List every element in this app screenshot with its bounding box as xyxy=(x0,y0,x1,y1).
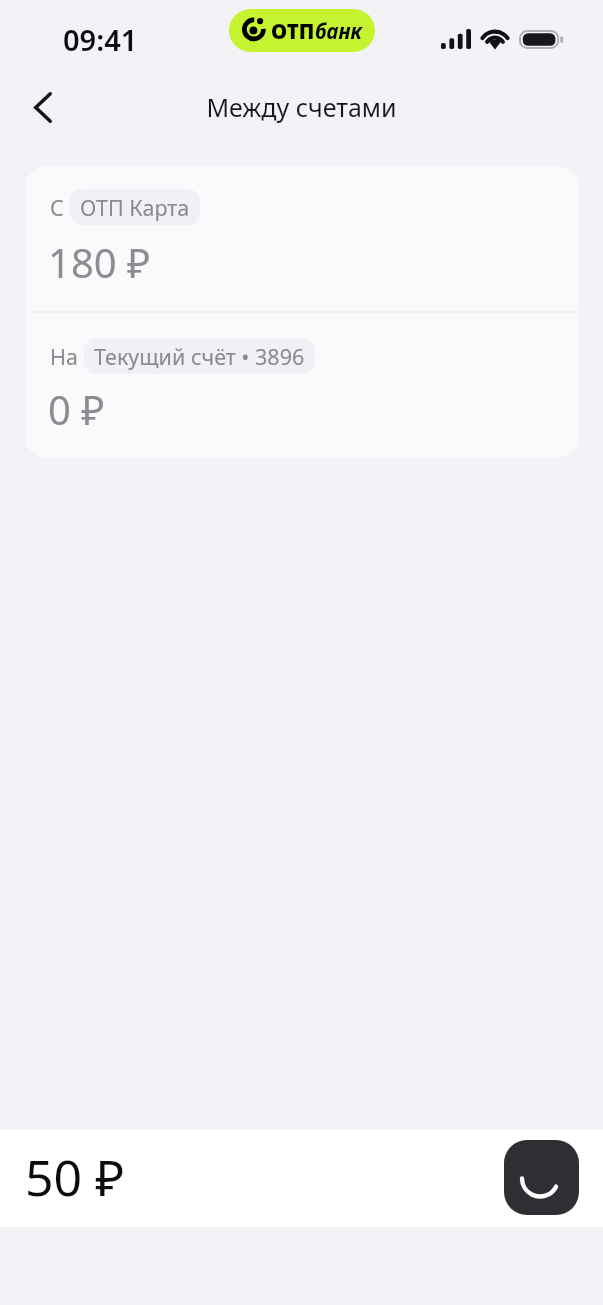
staticText: банк xyxy=(315,17,363,45)
button[interactable]: Back xyxy=(16,80,68,132)
staticText: На xyxy=(50,342,78,371)
staticText: 180 ₽ xyxy=(48,235,151,289)
button[interactable]: OTP Bank xyxy=(229,9,375,52)
staticText: 09:41 xyxy=(63,20,138,59)
button[interactable] xyxy=(25,313,579,458)
staticText: 0 ₽ xyxy=(48,382,105,436)
button[interactable] xyxy=(25,166,579,312)
staticText: ОТП Карта xyxy=(80,193,190,222)
staticText: Текущий счёт • 3896 xyxy=(94,342,305,371)
staticText: С xyxy=(50,193,64,222)
staticText: Между счетами xyxy=(206,90,397,124)
button[interactable]: Confirm transfer xyxy=(504,1140,579,1215)
staticText: 50 ₽ xyxy=(25,1143,125,1211)
staticText: ОТП xyxy=(271,17,315,45)
